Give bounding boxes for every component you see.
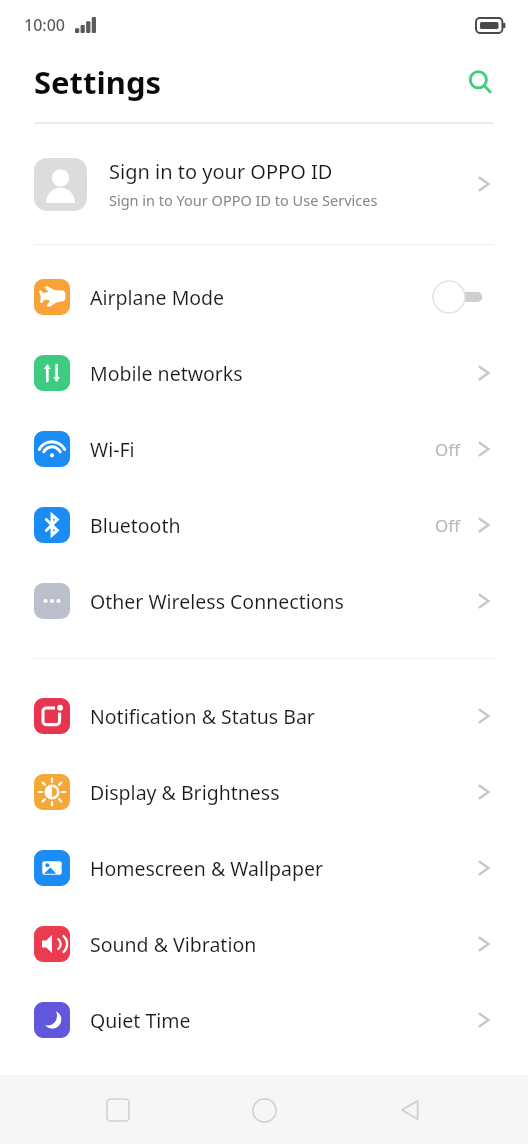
- staticText: Sign in to Your OPPO ID to Use Services: [109, 190, 378, 210]
- button[interactable]: Display & Brightness: [0, 754, 528, 830]
- button[interactable]: Bluetooth: [0, 487, 528, 563]
- button[interactable]: Airplane Mode: [0, 259, 528, 335]
- button[interactable]: Homescreen & Wallpaper: [0, 830, 528, 906]
- button[interactable]: Notification & Status Bar: [0, 678, 528, 754]
- staticText: Sound & Vibration: [90, 931, 474, 958]
- staticText: Notification & Status Bar: [90, 703, 474, 730]
- button[interactable]: Airplane Mode toggle: [432, 280, 494, 314]
- staticText: Bluetooth: [90, 512, 435, 539]
- staticText: Wi-Fi: [90, 436, 435, 463]
- button[interactable]: Sign in to your OPPO ID: [0, 124, 528, 244]
- staticText: Sign in to your OPPO ID: [109, 158, 333, 185]
- button[interactable]: Sound & Vibration: [0, 906, 528, 982]
- staticText: Quiet Time: [90, 1007, 474, 1034]
- button[interactable]: Mobile networks: [0, 335, 528, 411]
- button[interactable]: Home: [236, 1082, 292, 1138]
- staticText: Settings: [34, 61, 162, 103]
- button[interactable]: Quiet Time: [0, 982, 528, 1058]
- button[interactable]: Other Wireless Connections: [0, 563, 528, 639]
- staticText: Off: [435, 438, 460, 461]
- button[interactable]: Search: [458, 60, 502, 104]
- staticText: Other Wireless Connections: [90, 588, 474, 615]
- staticText: Off: [435, 514, 460, 537]
- button[interactable]: Recent apps: [90, 1082, 146, 1138]
- staticText: Display & Brightness: [90, 779, 474, 806]
- button[interactable]: Wi-Fi: [0, 411, 528, 487]
- staticText: Homescreen & Wallpaper: [90, 855, 474, 882]
- button[interactable]: Back: [382, 1082, 438, 1138]
- staticText: Airplane Mode: [90, 284, 432, 311]
- staticText: 10:00: [24, 14, 65, 36]
- staticText: Mobile networks: [90, 360, 474, 387]
